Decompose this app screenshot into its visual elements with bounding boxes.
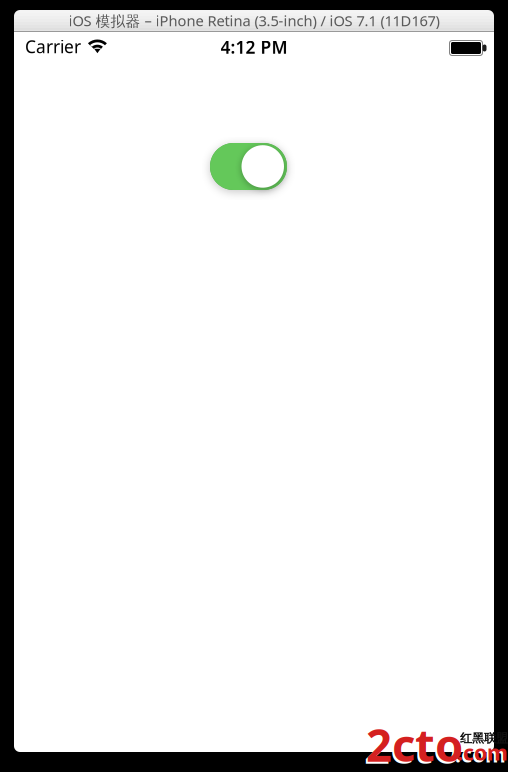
staticText: .com — [455, 740, 506, 768]
staticText: 红黑联盟 — [460, 731, 508, 746]
staticText: 2cto — [364, 716, 461, 772]
staticText: .com — [457, 738, 508, 766]
button[interactable]: Toggle — [210, 143, 287, 190]
staticText: 2cto — [366, 714, 463, 772]
staticText: iOS 模拟器 – iPhone Retina (3.5-inch) / iOS… — [68, 11, 439, 30]
staticText: Carrier — [25, 35, 81, 58]
staticText: 4:12 PM — [220, 35, 287, 58]
